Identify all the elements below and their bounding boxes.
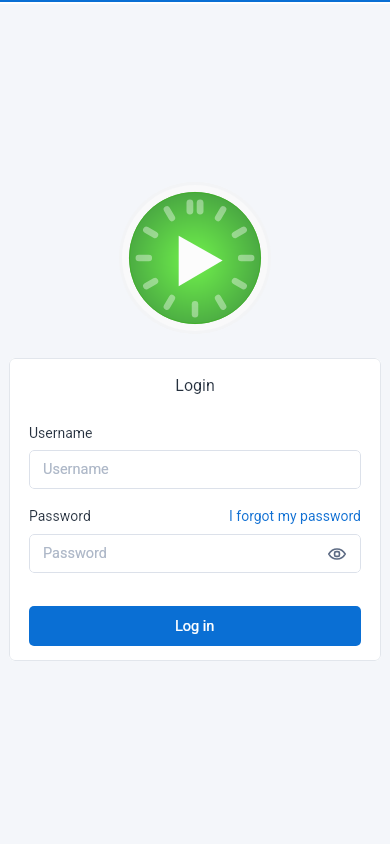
staticText: Log in	[175, 618, 215, 635]
button[interactable]: Log in	[29, 606, 361, 646]
staticText: Login	[9, 376, 381, 395]
staticText: Username	[29, 425, 93, 441]
staticText: Password	[43, 545, 108, 562]
staticText: Password	[29, 508, 91, 524]
staticText: I forgot my password	[229, 508, 361, 524]
staticText: Username	[43, 461, 109, 478]
button[interactable]: Username	[29, 450, 361, 489]
button[interactable]: I forgot my password	[229, 508, 361, 524]
button[interactable]: Password	[29, 534, 361, 573]
button[interactable]: Show password	[326, 543, 348, 565]
